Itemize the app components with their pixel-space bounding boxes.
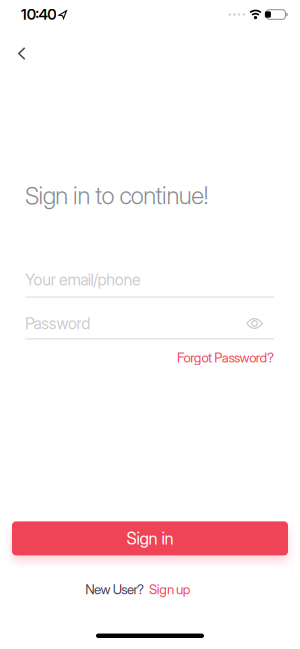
button[interactable]: Sign up	[149, 581, 191, 597]
button[interactable]: Back	[0, 35, 41, 70]
staticText: Sign in	[126, 528, 173, 548]
button[interactable]: Show password	[246, 318, 263, 329]
button[interactable]: Sign in	[12, 521, 288, 555]
staticText: Password	[25, 314, 90, 333]
staticText: Sign up	[149, 581, 191, 597]
staticText: New User?	[85, 581, 144, 597]
staticText: Sign in to continue!	[25, 181, 209, 210]
staticText: 10:40	[21, 6, 56, 23]
staticText: Your email/phone	[25, 270, 141, 289]
staticText: Forgot Password?	[177, 350, 274, 366]
button[interactable]: Forgot Password?	[177, 350, 274, 366]
